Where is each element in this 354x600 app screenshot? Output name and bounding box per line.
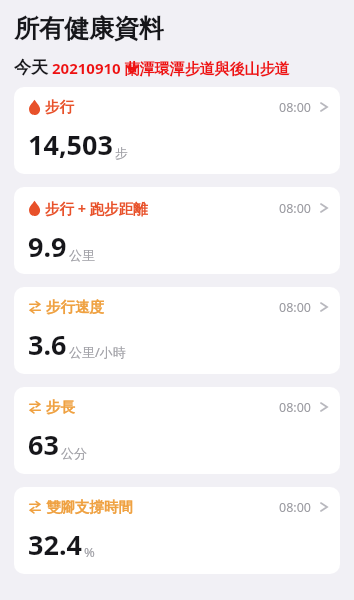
button[interactable]: Activity [14, 87, 340, 174]
staticText: 20210910 蘭潭環潭步道與後山步道 [52, 58, 290, 78]
staticText: 公里 [69, 247, 95, 263]
staticText: 08:00 [279, 99, 311, 116]
other: Walking [28, 399, 42, 415]
other: Activity [28, 99, 41, 115]
staticText: 步行 [45, 98, 74, 116]
staticText: 08:00 [279, 200, 311, 217]
staticText: 08:00 [279, 299, 311, 316]
staticText: 步行 + 跑步距離 [45, 198, 148, 218]
staticText: 公分 [61, 445, 87, 461]
staticText: 63 [28, 426, 59, 463]
staticText: 3.6 [28, 326, 67, 363]
staticText: 步長 [46, 398, 75, 416]
other: Walking [28, 299, 42, 315]
other: Walking [28, 499, 42, 515]
staticText: 今天 [14, 57, 48, 78]
staticText: % [84, 543, 95, 561]
button[interactable]: Walking [14, 387, 340, 474]
button[interactable]: Activity [14, 187, 340, 274]
button[interactable]: Walking [14, 287, 340, 374]
staticText: 公里/小時 [69, 343, 126, 361]
staticText: 08:00 [279, 399, 311, 416]
staticText: 32.4 [28, 526, 82, 563]
button[interactable]: Walking [14, 487, 340, 574]
staticText: 9.9 [28, 228, 67, 265]
staticText: 步行速度 [46, 298, 104, 316]
other: Activity [28, 200, 41, 216]
staticText: 14,503 [28, 126, 113, 163]
staticText: 雙腳支撐時間 [46, 498, 133, 516]
staticText: 08:00 [279, 499, 311, 516]
staticText: 所有健康資料 [14, 13, 164, 44]
staticText: 步 [115, 145, 128, 161]
